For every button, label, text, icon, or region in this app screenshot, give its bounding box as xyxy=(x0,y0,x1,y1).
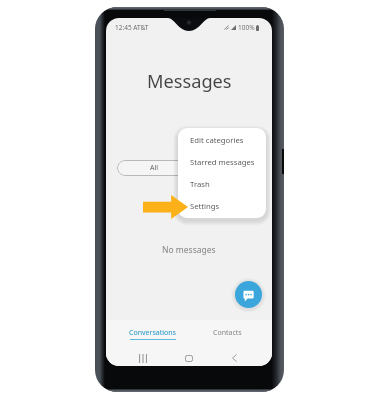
button[interactable]: Starred messages xyxy=(178,151,266,173)
button[interactable]: Recents xyxy=(132,348,153,366)
staticText: 100% xyxy=(238,23,255,32)
button[interactable]: Home xyxy=(178,348,199,366)
button[interactable]: Back xyxy=(224,348,245,366)
staticText: Contacts xyxy=(213,328,242,338)
button[interactable]: Trash xyxy=(178,173,266,195)
staticText: No messages xyxy=(162,244,216,256)
button[interactable]: Conversations xyxy=(118,328,186,350)
button[interactable]: Settings xyxy=(178,195,266,217)
staticText: 12:45 AT&T xyxy=(115,23,149,32)
staticText: All xyxy=(150,163,159,173)
button[interactable]: New conversation xyxy=(235,281,262,308)
staticText: Conversations xyxy=(129,328,176,338)
button[interactable]: All xyxy=(117,160,191,176)
button[interactable]: Contacts xyxy=(199,328,255,350)
staticText: Starred messages xyxy=(190,157,255,167)
staticText: Edit categories xyxy=(190,135,244,145)
button[interactable]: Edit categories xyxy=(178,129,266,151)
staticText: Trash xyxy=(190,179,210,189)
staticText: Settings xyxy=(190,201,220,211)
staticText: Messages xyxy=(147,69,232,93)
